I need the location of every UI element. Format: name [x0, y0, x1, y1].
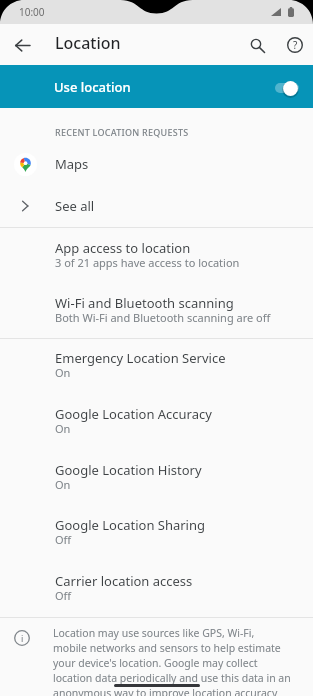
button[interactable]: Use location — [0, 65, 313, 108]
staticText: 3 of 21 apps have access to location — [55, 255, 240, 270]
staticText: On — [55, 421, 71, 436]
staticText: Off — [55, 532, 72, 547]
staticText: App access to location — [55, 239, 191, 257]
button[interactable]: Maps — [0, 147, 313, 181]
button[interactable]: Emergency Location Service — [0, 347, 313, 390]
staticText: Google Location History — [55, 461, 202, 479]
staticText: See all — [55, 197, 95, 215]
button[interactable]: Help — [278, 28, 312, 62]
staticText: RECENT LOCATION REQUESTS — [55, 126, 189, 138]
button[interactable]: Google Location History — [0, 459, 313, 502]
button[interactable]: Wi-Fi and Bluetooth scanning — [0, 292, 313, 335]
button[interactable]: Google Location Sharing — [0, 514, 313, 557]
staticText: Location — [55, 32, 121, 54]
staticText: 10:00 — [19, 5, 45, 19]
staticText: Off — [55, 588, 72, 603]
staticText: Location may use sources like GPS, Wi-Fi… — [53, 626, 291, 696]
button[interactable]: Google Location Accuracy — [0, 403, 313, 446]
staticText: Use location — [54, 78, 131, 96]
button[interactable]: Back — [5, 28, 39, 62]
staticText: Google Location Sharing — [55, 516, 206, 534]
staticText: Maps — [55, 155, 89, 173]
button[interactable]: Carrier location access — [0, 570, 313, 613]
staticText: Carrier location access — [55, 572, 193, 590]
staticText: i — [21, 632, 24, 644]
staticText: Both Wi-Fi and Bluetooth scanning are of… — [55, 310, 271, 325]
staticText: Emergency Location Service — [55, 349, 226, 367]
staticText: Wi-Fi and Bluetooth scanning — [55, 294, 234, 312]
staticText: Google Location Accuracy — [55, 405, 212, 423]
button[interactable]: App access to location — [0, 237, 313, 280]
button[interactable]: See all — [0, 189, 313, 223]
staticText: On — [55, 477, 71, 492]
staticText: On — [55, 365, 71, 380]
button[interactable]: Search — [240, 28, 274, 62]
staticText: ? — [293, 38, 298, 52]
